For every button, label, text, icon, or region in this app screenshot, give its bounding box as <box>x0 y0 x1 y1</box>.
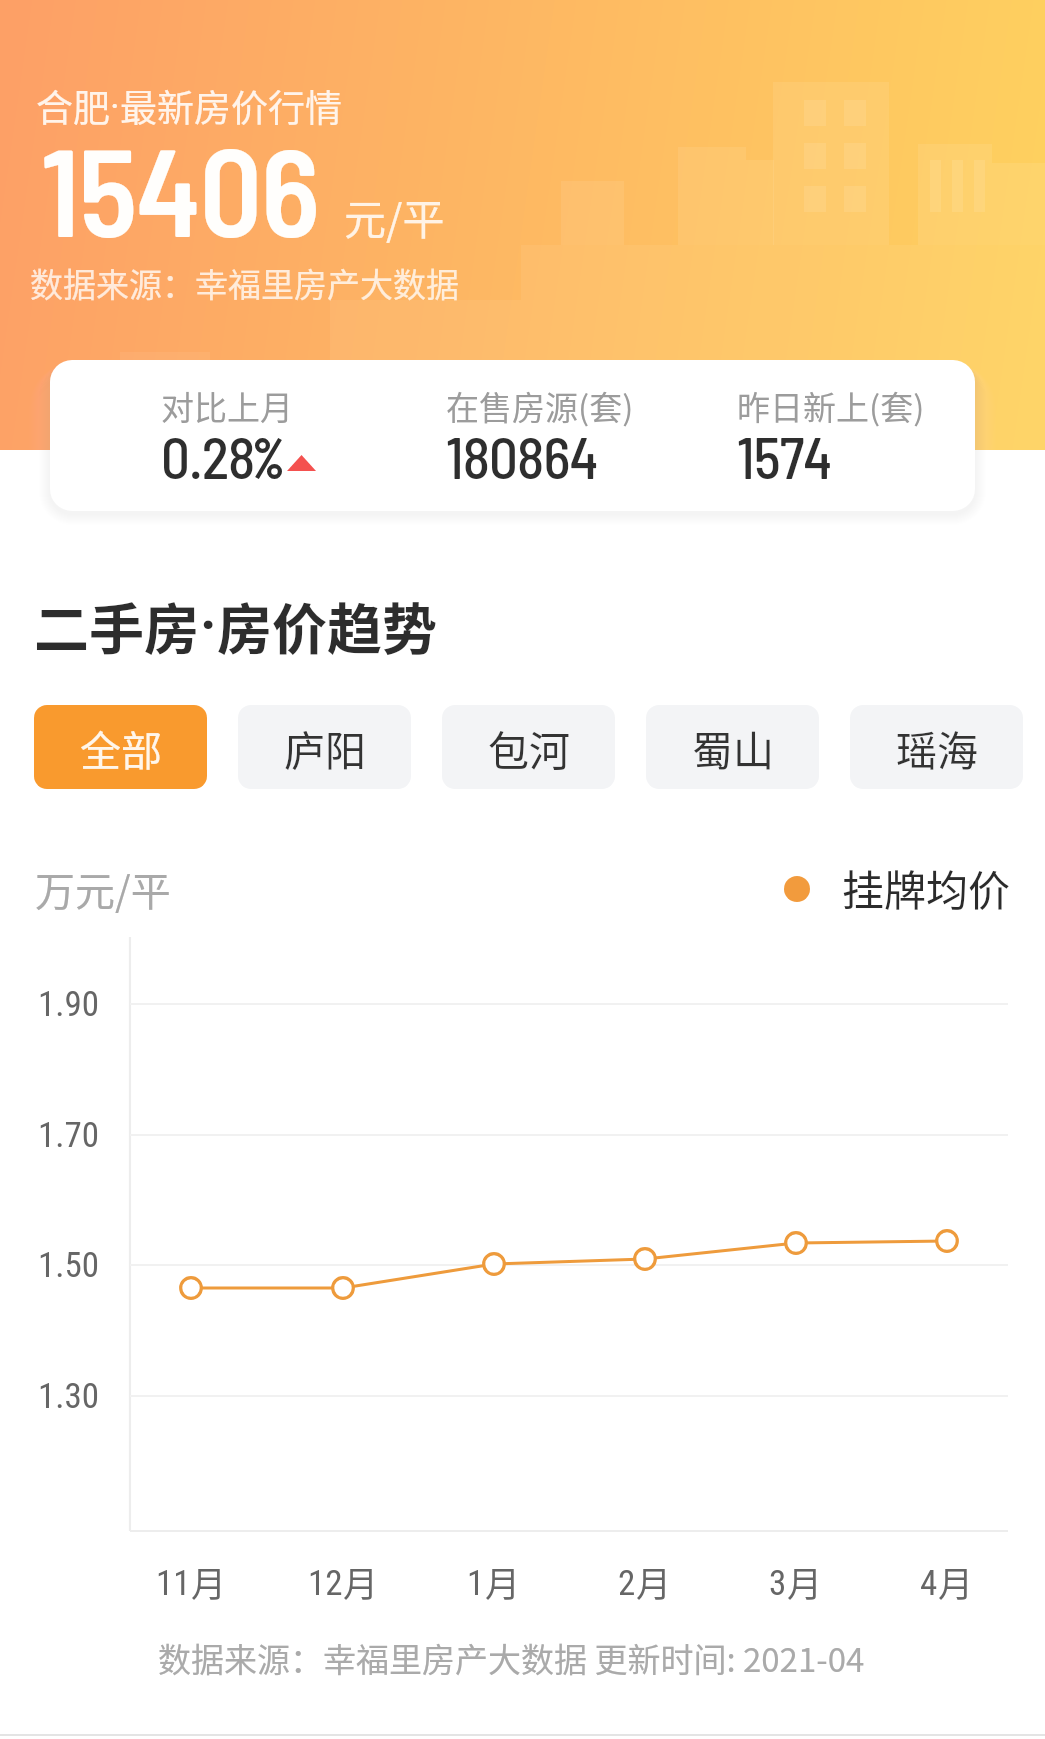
staticText: 1 <box>467 1563 485 1604</box>
staticText: 全部 <box>80 718 162 777</box>
staticText: 挂牌均价 <box>842 857 1011 918</box>
staticText: 1574 <box>737 422 832 490</box>
staticText: 15406 <box>41 114 320 262</box>
staticText: 数据来源：幸福里房产大数据 更新时间: 2021-04 <box>158 1634 865 1682</box>
staticText: 月 <box>938 1556 974 1607</box>
staticText: 0.28 <box>161 422 255 490</box>
staticText: 月 <box>485 1556 521 1607</box>
staticText: 瑶海 <box>896 718 978 777</box>
staticText: 2 <box>618 1563 636 1604</box>
staticText: 昨日新上(套) <box>737 382 925 430</box>
staticText: 180864 <box>446 422 598 490</box>
staticText: 月 <box>636 1556 672 1607</box>
staticText: 3 <box>769 1563 787 1604</box>
button[interactable]: 蜀山 <box>646 705 819 789</box>
staticText: 最新房价行情 <box>120 79 342 133</box>
staticText: 包河 <box>488 718 570 777</box>
button[interactable]: 全部 <box>34 705 207 789</box>
staticText: 1.90 <box>0 984 99 1025</box>
staticText: 月 <box>191 1556 227 1607</box>
staticText: · <box>110 85 120 128</box>
staticText: 数据来源：幸福里房产大数据 <box>30 259 459 307</box>
staticText: 12 <box>308 1563 343 1604</box>
staticText: · <box>200 593 217 657</box>
staticText: 二手房 <box>34 585 200 665</box>
staticText: 1.30 <box>0 1376 99 1417</box>
staticText: 在售房源(套) <box>446 382 634 430</box>
button[interactable]: 瑶海 <box>850 705 1023 789</box>
staticText: 4 <box>920 1563 938 1604</box>
staticText: 房价趋势 <box>217 585 438 665</box>
staticText: 元/平 <box>344 186 445 247</box>
staticText: 1.50 <box>0 1245 99 1286</box>
staticText: 蜀山 <box>692 718 774 777</box>
staticText: 万元/平 <box>35 860 171 918</box>
button[interactable]: 庐阳 <box>238 705 411 789</box>
staticText: 月 <box>343 1556 379 1607</box>
staticText: 1.70 <box>0 1115 99 1156</box>
staticText: 11 <box>156 1563 191 1604</box>
staticText: 月 <box>787 1556 823 1607</box>
button[interactable]: 包河 <box>442 705 615 789</box>
staticText: 庐阳 <box>284 718 366 777</box>
staticText: 合肥 <box>36 79 110 133</box>
staticText: 对比上月 <box>161 382 293 430</box>
